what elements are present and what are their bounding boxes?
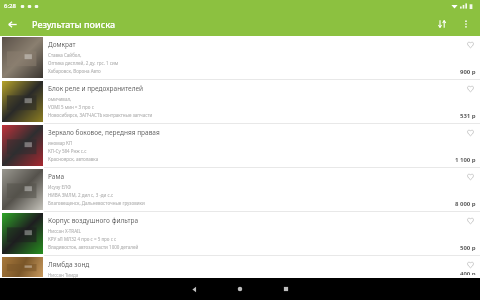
button[interactable]: More options — [454, 12, 478, 36]
button[interactable]: Recent apps — [263, 278, 309, 300]
staticText: 400 р — [460, 270, 476, 275]
button[interactable]: Home — [217, 278, 263, 300]
staticText: VOMI 5 мин = 3 про с — [48, 104, 94, 110]
button[interactable]: Add to favorites — [465, 39, 476, 50]
staticText: Владивосток, автозапчасти 1000 деталей — [48, 244, 139, 250]
staticText: Хабаровск, Ворона Авто — [48, 68, 101, 74]
staticText: 8 000 р — [455, 200, 476, 208]
button[interactable]: Лямбда зонд — [0, 256, 480, 278]
button[interactable]: Домкрат — [0, 36, 480, 79]
staticText: Благовещенск, Дальневосточные грузовики — [48, 200, 145, 206]
staticText: НИВА 3МЛМ, 2 дил с, 3 -ди с.с — [48, 192, 114, 198]
staticText: КП-Су 584 Рнж с.с — [48, 148, 87, 154]
button[interactable]: Корпус воздушного фильтра — [0, 212, 480, 255]
button[interactable]: Add to favorites — [465, 127, 476, 138]
staticText: Новосибирск, ЗАПЧАСТЬ контрактные запчас… — [48, 112, 153, 118]
button[interactable]: Блок реле и предохранителей — [0, 80, 480, 123]
staticText: КРУ эЛ МЛ32 4 про с = 5 про с с — [48, 236, 117, 242]
staticText: 500 р — [460, 244, 476, 252]
staticText: Исузу ЕЛФ — [48, 184, 71, 190]
staticText: иномар КП — [48, 140, 73, 146]
staticText: Красноярск, автолавка — [48, 156, 99, 162]
button[interactable]: Add to favorites — [465, 215, 476, 226]
button[interactable]: Add to favorites — [465, 83, 476, 94]
staticText: Рама — [48, 172, 64, 181]
button[interactable]: Back — [171, 278, 217, 300]
staticText: омичивал, — [48, 96, 72, 102]
staticText: Домкрат — [48, 40, 76, 49]
staticText: Лямбда зонд — [48, 260, 90, 269]
staticText: 900 р — [460, 68, 476, 76]
staticText: Ставка Сайбол, — [48, 52, 82, 58]
staticText: Корпус воздушного фильтра — [48, 216, 139, 225]
button[interactable]: Add to favorites — [465, 171, 476, 182]
staticText: Зеркало боковое, передняя правая — [48, 128, 160, 137]
button[interactable]: Add to favorites — [465, 259, 476, 270]
staticText: Оптика дисплей, 2 ду. грс. 1 сим — [48, 60, 119, 66]
staticText: Блок реле и предохранителей — [48, 84, 144, 93]
button[interactable]: Sort — [430, 12, 454, 36]
staticText: Ниссан Тиида — [48, 272, 79, 278]
button[interactable]: Back — [0, 12, 24, 36]
staticText: Ниссан X-TRAIL — [48, 228, 81, 234]
staticText: Результаты поиска — [32, 18, 116, 30]
button[interactable]: Зеркало боковое, передняя правая — [0, 124, 480, 167]
staticText: 531 р — [460, 112, 476, 120]
button[interactable]: Рама — [0, 168, 480, 211]
staticText: 6:28 — [4, 2, 16, 10]
staticText: 1 100 р — [455, 156, 476, 164]
